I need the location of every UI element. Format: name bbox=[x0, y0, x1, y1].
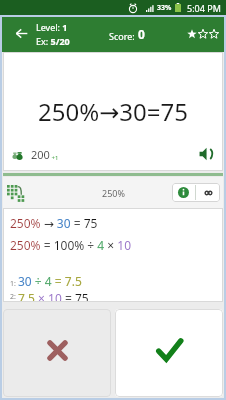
button[interactable]: Play sound bbox=[197, 145, 215, 163]
staticText: 33% bbox=[157, 3, 172, 13]
staticText: Score: bbox=[109, 30, 138, 42]
staticText: 1: bbox=[10, 279, 18, 289]
button[interactable]: Simplify bbox=[7, 185, 29, 207]
staticText: +1 bbox=[50, 154, 59, 162]
staticText: 250% = 100% ÷ 4 × 10 bbox=[10, 237, 132, 253]
staticText: 250%→30=75 bbox=[38, 95, 188, 128]
button[interactable]: Info bbox=[172, 183, 195, 202]
staticText: Level: 1 bbox=[36, 21, 68, 33]
staticText: Ex: 5/20 bbox=[36, 35, 70, 47]
staticText: 0 bbox=[138, 26, 145, 42]
staticText: 7.5 × 10 = 75 bbox=[18, 290, 89, 302]
staticText: 200 bbox=[31, 147, 50, 162]
button[interactable]: More options bbox=[196, 183, 220, 202]
staticText: 250% bbox=[102, 187, 125, 199]
staticText: 5:04 PM bbox=[187, 2, 221, 14]
staticText: 30 ÷ 4 = 7.5 bbox=[18, 273, 82, 289]
button[interactable]: Wrong bbox=[3, 309, 111, 397]
staticText: 2: bbox=[10, 292, 18, 302]
button[interactable]: Correct bbox=[115, 309, 223, 397]
staticText: 250% → 30 = 75 bbox=[10, 215, 98, 231]
button[interactable]: Back bbox=[0, 15, 34, 52]
